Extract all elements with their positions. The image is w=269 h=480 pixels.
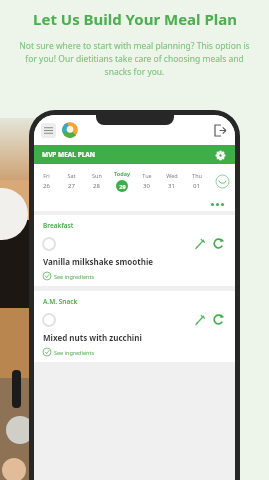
- button[interactable]: Fri: [34, 164, 59, 198]
- staticText: Tue: [142, 172, 152, 179]
- staticText: Let Us Build Your Meal Plan: [33, 9, 237, 29]
- button[interactable]: Breakfast: [34, 215, 235, 286]
- button[interactable]: Edit meal: [192, 236, 207, 251]
- staticText: 26: [43, 182, 50, 190]
- staticText: 30: [143, 182, 150, 190]
- button[interactable]: Tue: [134, 164, 159, 198]
- staticText: 01: [193, 182, 200, 190]
- staticText: Mixed nuts with zucchini: [43, 332, 142, 343]
- button[interactable]: Swap meal: [211, 312, 226, 327]
- button[interactable]: Sun: [84, 164, 109, 198]
- staticText: Today: [114, 170, 130, 177]
- staticText: Not sure where to start with meal planni…: [14, 40, 255, 78]
- staticText: 29: [119, 183, 126, 190]
- staticText: MVP MEAL PLAN: [42, 150, 96, 159]
- staticText: See ingredients: [54, 273, 95, 280]
- staticText: A.M. Snack: [43, 297, 78, 306]
- button[interactable]: Today: [109, 164, 134, 198]
- staticText: Wed: [166, 172, 178, 179]
- button[interactable]: Sat: [59, 164, 84, 198]
- button[interactable]: A.M. Snack: [34, 291, 235, 362]
- button[interactable]: Menu: [41, 123, 56, 138]
- button[interactable]: Wed: [159, 164, 184, 198]
- staticText: See ingredients: [54, 349, 95, 356]
- button[interactable]: Log out: [212, 122, 228, 138]
- staticText: Sun: [92, 172, 102, 179]
- staticText: Sat: [67, 172, 76, 179]
- button[interactable]: See ingredients: [43, 348, 95, 356]
- staticText: Fri: [43, 172, 50, 179]
- staticText: Thu: [192, 172, 202, 179]
- staticText: 31: [168, 182, 175, 190]
- button[interactable]: Thu: [184, 164, 209, 198]
- staticText: 27: [68, 182, 75, 190]
- button[interactable]: More options: [210, 203, 225, 206]
- button[interactable]: Mood: [209, 164, 235, 198]
- button[interactable]: Settings: [213, 148, 227, 162]
- button[interactable]: Edit meal: [192, 312, 207, 327]
- staticText: Breakfast: [43, 221, 74, 230]
- staticText: Vanilla milkshake smoothie: [43, 256, 154, 267]
- staticText: 28: [93, 182, 100, 190]
- button[interactable]: See ingredients: [43, 272, 95, 280]
- button[interactable]: Swap meal: [211, 236, 226, 251]
- button[interactable]: Profile: [62, 122, 78, 138]
